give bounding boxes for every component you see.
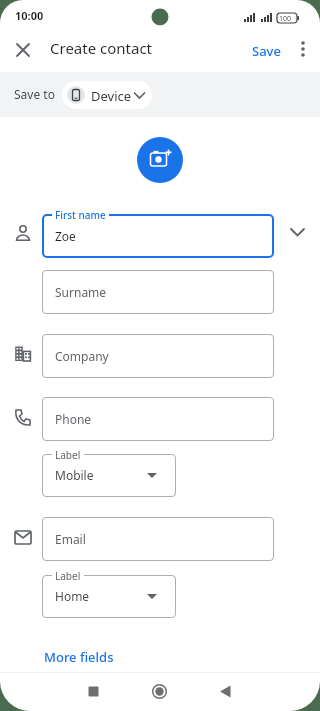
button[interactable]: Zoe <box>42 214 274 258</box>
button[interactable] <box>292 34 314 64</box>
staticText: First name <box>55 208 106 222</box>
staticText: 10:00 <box>15 8 44 23</box>
staticText: Create contact <box>50 38 153 58</box>
button[interactable]: Email <box>42 517 274 561</box>
staticText: Label <box>55 569 81 583</box>
staticText: Save <box>252 42 281 60</box>
button[interactable] <box>137 137 183 183</box>
button[interactable]: Company <box>42 334 274 378</box>
staticText: Device <box>91 87 132 105</box>
button[interactable]: Phone <box>42 397 274 441</box>
button[interactable] <box>149 681 170 702</box>
staticText: Surname <box>55 284 107 300</box>
button[interactable]: Mobile <box>42 454 176 497</box>
button[interactable]: Surname <box>42 270 274 314</box>
button[interactable] <box>83 681 104 702</box>
staticText: Phone <box>55 411 92 427</box>
staticText: Email <box>55 531 86 547</box>
button[interactable]: Save <box>252 42 281 60</box>
staticText: Save to <box>14 86 55 102</box>
button[interactable]: More fields <box>44 648 114 666</box>
staticText: Zoe <box>55 228 76 244</box>
button[interactable]: Home <box>42 575 176 618</box>
button[interactable] <box>8 34 38 64</box>
staticText: More fields <box>44 648 114 666</box>
button[interactable] <box>215 681 236 702</box>
button[interactable]: Device <box>62 81 152 109</box>
staticText: Company <box>55 348 109 364</box>
staticText: 100 <box>279 14 292 24</box>
staticText: Mobile <box>55 467 94 483</box>
staticText: Home <box>55 588 90 604</box>
staticText: Label <box>55 448 81 462</box>
